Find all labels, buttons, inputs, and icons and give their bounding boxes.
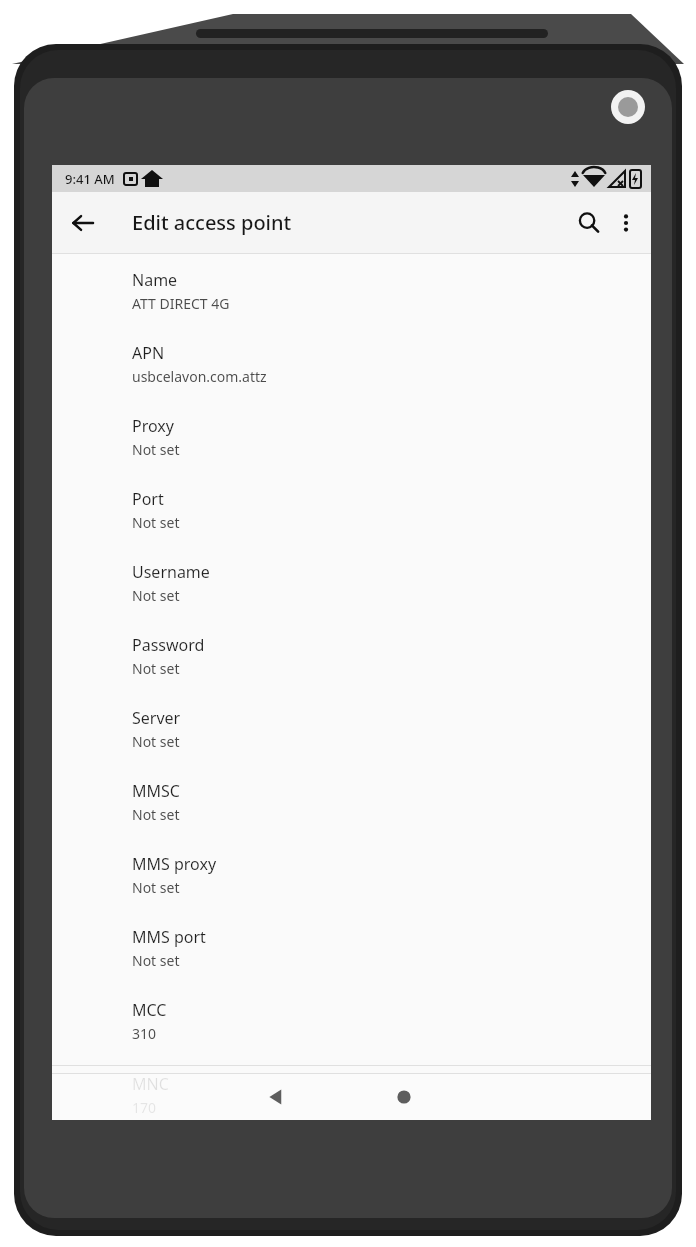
button[interactable]: Search [563,197,615,249]
staticText: 170 [132,1098,157,1117]
staticText: MMS proxy [132,853,217,875]
staticText: Not set [132,951,180,970]
button[interactable]: Server [52,700,651,773]
button[interactable]: Navigate up [55,195,111,251]
button[interactable]: More options [602,199,650,247]
staticText: Name [132,269,178,291]
staticText: MCC [132,999,167,1021]
staticText: Password [132,634,205,656]
button[interactable]: Username [52,554,651,627]
staticText: APN [132,342,165,364]
button[interactable]: Back [236,1073,316,1120]
button[interactable]: MNC [52,1066,651,1120]
button[interactable]: Proxy [52,408,651,481]
button[interactable]: MMS proxy [52,846,651,919]
staticText: Edit access point [132,209,292,236]
staticText: Proxy [132,415,174,437]
staticText: Server [132,707,181,729]
button[interactable]: Password [52,627,651,700]
button[interactable]: MCC [52,992,651,1065]
staticText: Not set [132,586,180,605]
staticText: Not set [132,732,180,751]
button[interactable]: MMS port [52,919,651,992]
staticText: Not set [132,513,180,532]
staticText: 9:41 AM [65,170,115,188]
staticText: Username [132,561,210,583]
staticText: Port [132,488,164,510]
button[interactable]: MMSC [52,773,651,846]
button[interactable]: Port [52,481,651,554]
staticText: Not set [132,440,180,459]
staticText: MNC [132,1073,169,1095]
staticText: 310 [132,1024,157,1043]
button[interactable]: APN [52,335,651,408]
staticText: MMS port [132,926,206,948]
staticText: usbcelavon.com.attz [132,367,267,386]
staticText: MMSC [132,780,180,802]
staticText: Not set [132,805,180,824]
button[interactable]: Name [52,262,651,335]
staticText: Not set [132,878,180,897]
button[interactable]: Home [364,1073,444,1120]
staticText: ATT DIRECT 4G [132,294,230,313]
staticText: Not set [132,659,180,678]
